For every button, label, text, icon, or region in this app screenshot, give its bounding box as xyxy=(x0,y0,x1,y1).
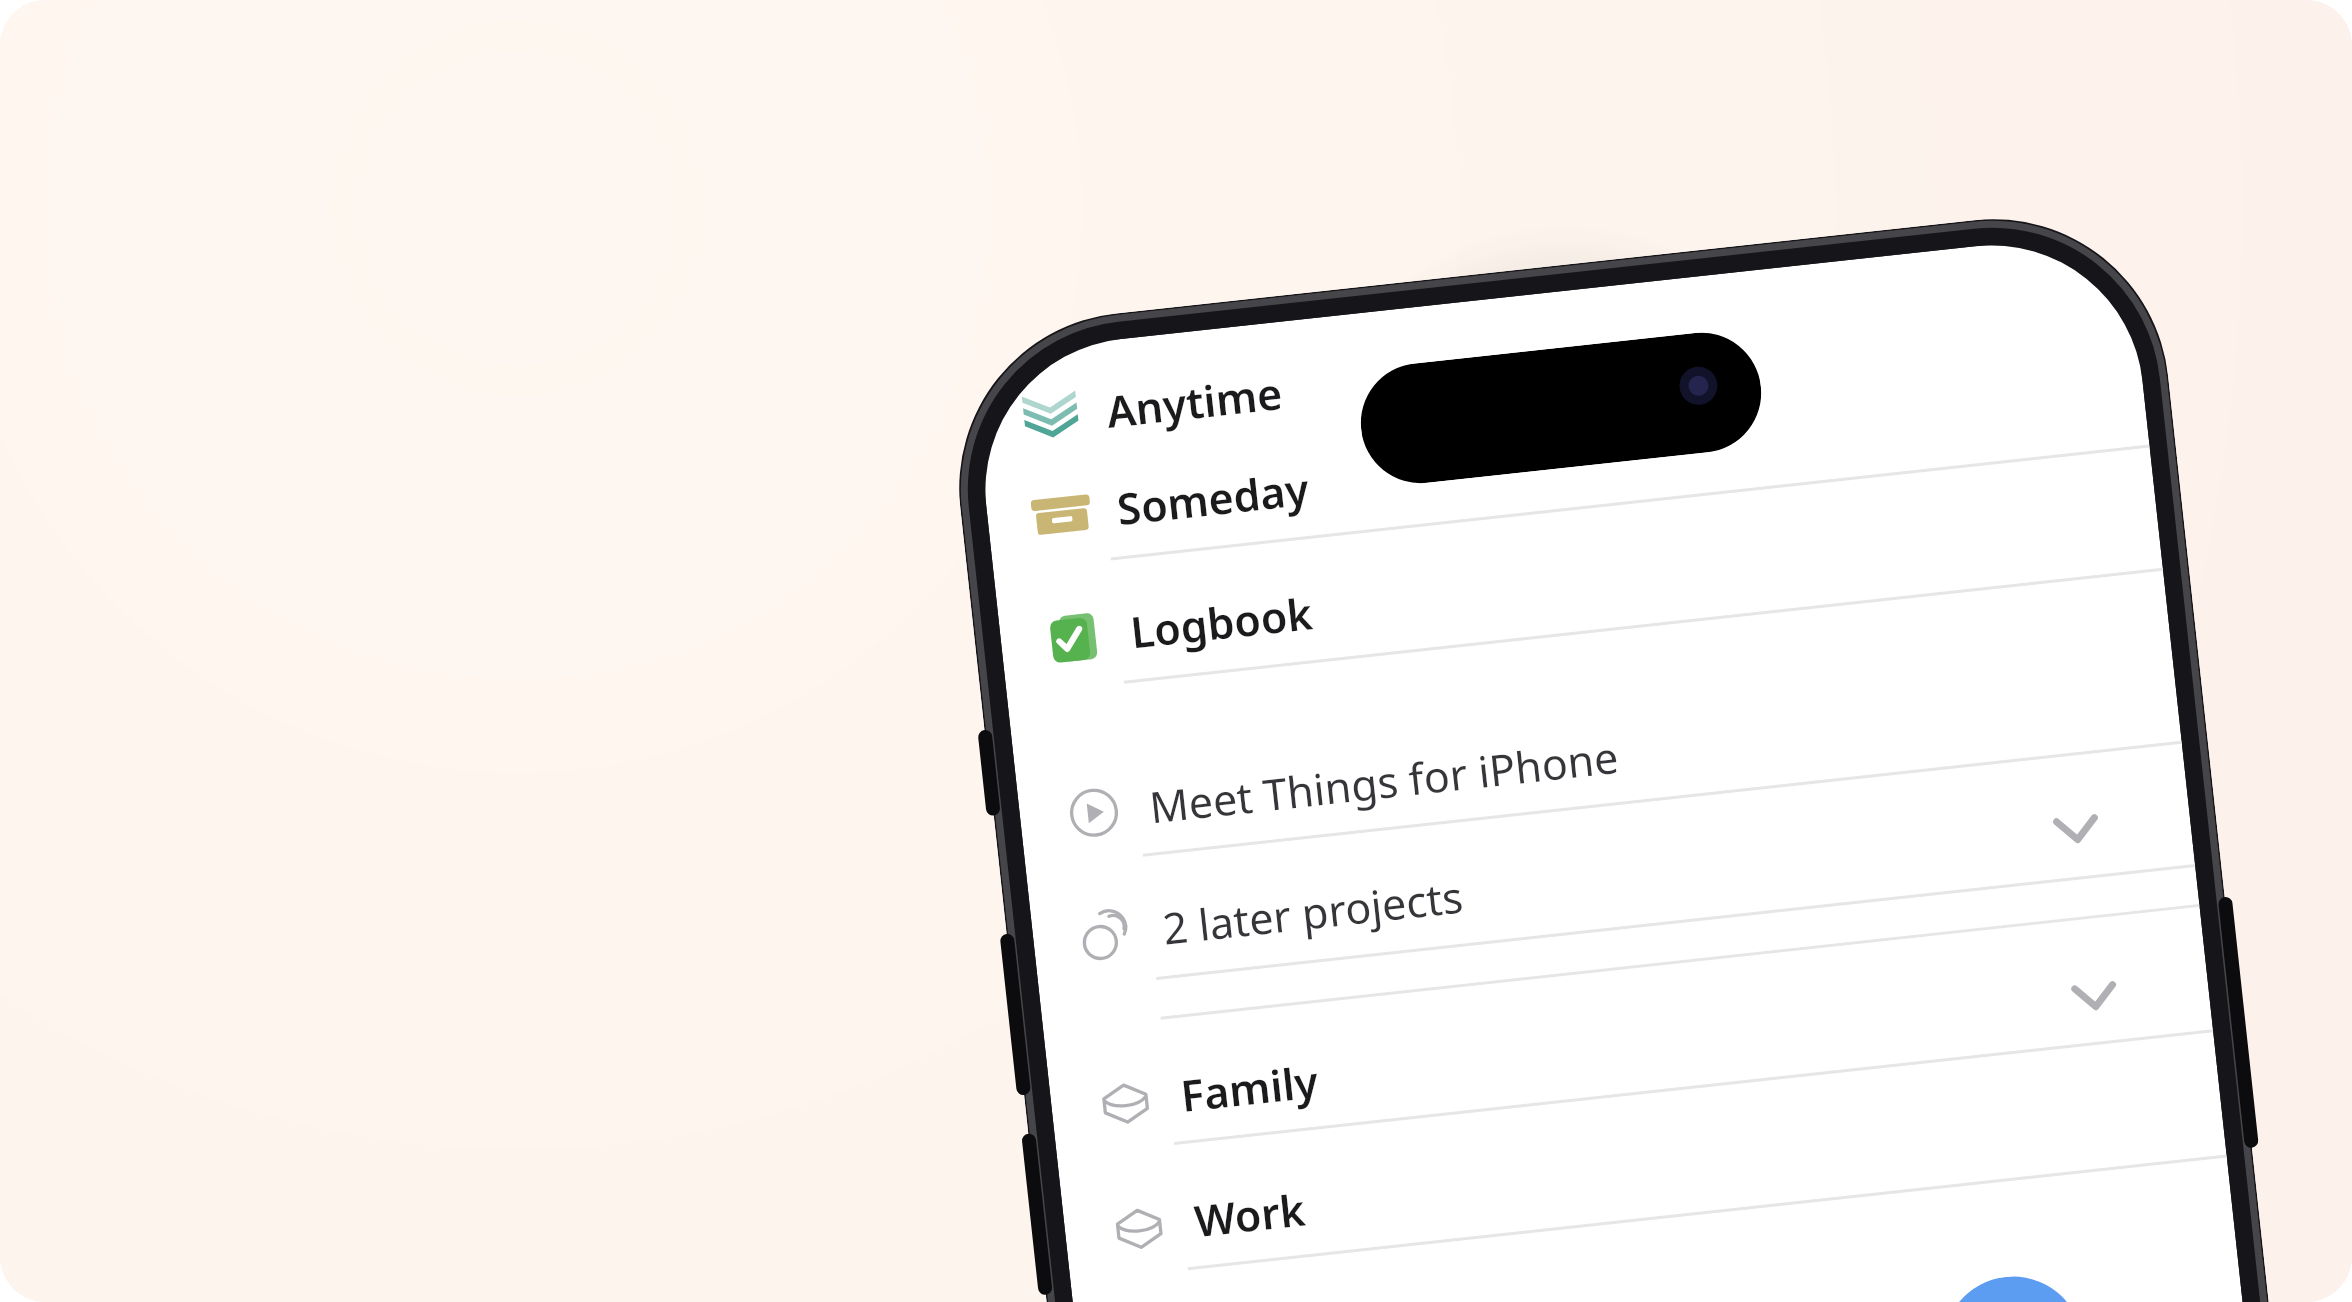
staticText: Meet Things for iPhone xyxy=(1147,727,1621,836)
staticText: 2 later projects xyxy=(1160,866,1466,958)
button[interactable]: Family xyxy=(1047,936,2213,1157)
button[interactable]: Anytime xyxy=(972,252,2139,473)
button[interactable]: Work xyxy=(1060,1061,2227,1282)
button[interactable]: Logbook xyxy=(996,472,2163,693)
button[interactable]: 2 later projects xyxy=(1028,769,2195,990)
button[interactable]: Meet Things for iPhone xyxy=(1015,647,2182,868)
staticText: Anytime xyxy=(1104,363,1285,441)
staticText: Family xyxy=(1178,1051,1321,1125)
button[interactable]: Someday xyxy=(983,349,2149,570)
staticText: Work xyxy=(1191,1179,1308,1250)
staticText: Someday xyxy=(1114,459,1312,538)
button[interactable]: Filters xyxy=(1074,1186,2240,1302)
staticText: Logbook xyxy=(1127,583,1316,661)
button[interactable]: New To-Do xyxy=(1936,1269,2090,1302)
